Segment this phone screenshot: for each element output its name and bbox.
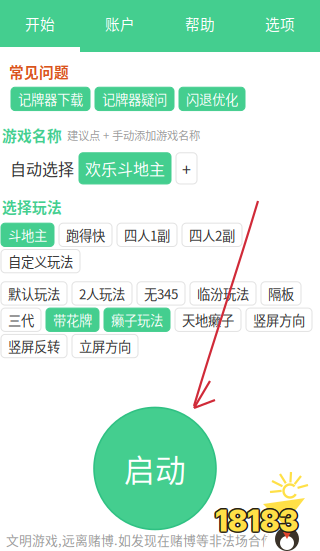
staticText: 四人2副 (189, 225, 235, 244)
button[interactable]: 开始 (0, 0, 80, 52)
staticText: 2人玩法 (79, 284, 125, 303)
staticText: 账户 (105, 13, 135, 34)
button[interactable]: 临汾玩法 (190, 282, 256, 305)
staticText: 18183 (216, 503, 299, 538)
button[interactable]: 竖屏方向 (246, 308, 312, 331)
staticText: 文明游戏,远离赌博.如发现在赌博等非法场合使用 (6, 530, 287, 549)
button[interactable]: 记牌器疑问 (95, 87, 174, 110)
button[interactable]: 跑得快 (59, 223, 112, 246)
staticText: 三代 (8, 310, 34, 329)
staticText: 18183 (214, 503, 297, 538)
staticText: 18183 (215, 502, 298, 537)
staticText: + (182, 157, 191, 180)
button[interactable]: 帮助 (160, 0, 240, 52)
button[interactable]: 账户 (80, 0, 160, 52)
button[interactable]: 无345 (137, 282, 185, 305)
button[interactable]: 三代 (1, 308, 41, 331)
staticText: 启动 (124, 446, 186, 491)
staticText: 默认玩法 (8, 284, 60, 303)
staticText: 跑得快 (66, 225, 105, 244)
staticText: 常见问题 (9, 61, 69, 82)
staticText: 自动选择 (10, 157, 74, 180)
button[interactable]: 四人1副 (117, 223, 177, 246)
button[interactable]: 选项 (240, 0, 320, 52)
staticText: 18183 (214, 502, 297, 537)
staticText: 隔板 (268, 284, 294, 303)
staticText: 18183 (215, 503, 298, 538)
staticText: 竖屏反转 (8, 336, 60, 356)
staticText: 帮助 (185, 13, 215, 34)
staticText: 临汾玩法 (197, 284, 249, 303)
staticText: 斗地主 (8, 225, 47, 244)
staticText: 选项 (265, 13, 295, 34)
staticText: 癞子玩法 (111, 310, 163, 329)
button[interactable]: 记牌器下载 (11, 87, 90, 110)
staticText: 欢乐斗地主 (85, 157, 165, 180)
button[interactable]: 四人2副 (182, 223, 242, 246)
button[interactable]: 癞子玩法 (104, 308, 170, 331)
staticText: 带花牌 (53, 310, 92, 329)
staticText: 选择玩法 (2, 196, 62, 217)
button[interactable]: 竖屏反转 (1, 334, 67, 358)
button[interactable]: 隔板 (261, 282, 301, 305)
staticText: 18183 (215, 504, 298, 540)
button[interactable]: 带花牌 (46, 308, 99, 331)
staticText: 立屏方向 (79, 336, 131, 356)
staticText: 18183 (214, 504, 297, 539)
staticText: 四人1副 (124, 225, 170, 244)
staticText: 建议点 + 手动添加游戏名称 (67, 127, 200, 143)
staticText: 游戏名称 (2, 124, 62, 146)
staticText: 闪退优化 (186, 89, 238, 108)
staticText: 无345 (144, 284, 178, 303)
button[interactable]: 自定义玩法 (1, 249, 80, 273)
button[interactable]: + (176, 153, 197, 184)
button[interactable]: 闪退优化 (179, 87, 245, 110)
staticText: 记牌器下载 (18, 89, 83, 108)
button[interactable]: 天地癞子 (175, 308, 241, 331)
button[interactable]: 默认玩法 (1, 282, 67, 305)
staticText: 18183 (216, 504, 299, 539)
staticText: 开始 (25, 13, 55, 34)
staticText: 记牌器疑问 (102, 89, 167, 108)
staticText: 自定义玩法 (8, 251, 73, 271)
staticText: 竖屏方向 (253, 310, 305, 329)
staticText: 天地癞子 (182, 310, 234, 329)
button[interactable]: 2人玩法 (72, 282, 132, 305)
button[interactable]: 斗地主 (1, 223, 54, 246)
button[interactable]: 立屏方向 (72, 334, 138, 358)
staticText: 18183 (216, 502, 299, 537)
button[interactable]: 欢乐斗地主 (79, 153, 171, 184)
button[interactable]: 启动 (94, 407, 216, 529)
